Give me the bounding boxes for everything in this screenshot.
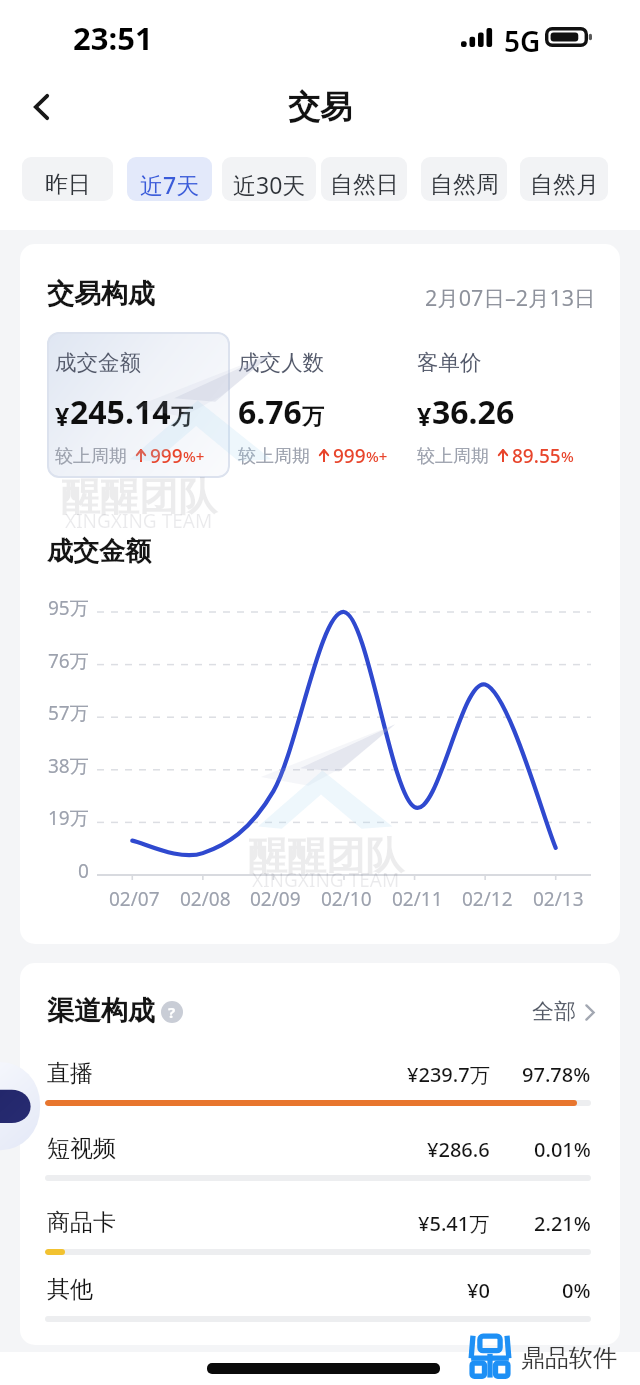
staticText: 成交金额 (47, 535, 151, 568)
staticText: 76万 (48, 648, 89, 674)
staticText: 交易 (288, 87, 352, 127)
staticText: 0.01% (534, 1136, 591, 1163)
button[interactable]: 自然日 (321, 157, 407, 201)
staticText: 万 (171, 403, 193, 431)
button[interactable] (47, 332, 230, 478)
staticText: %+ (366, 446, 388, 466)
staticText: 0% (562, 1277, 591, 1304)
staticText: 较上周期 (238, 445, 310, 468)
staticText: 近7天 (140, 169, 200, 200)
staticText: 自然月 (530, 170, 599, 199)
staticText: 02/07 (109, 886, 160, 912)
staticText: 02/11 (392, 886, 443, 912)
staticText: 较上周期 (417, 445, 489, 468)
staticText: 鼎品软件 (521, 1343, 617, 1373)
staticText: ¥239.7万 (407, 1061, 490, 1088)
staticText: 36.26 (432, 390, 515, 434)
staticText: ¥0 (467, 1277, 490, 1304)
staticText: XINGXING TEAM (252, 867, 400, 893)
staticText: 95万 (48, 595, 89, 621)
staticText: XINGXING TEAM (65, 508, 213, 534)
button[interactable]: 近7天 (127, 157, 212, 201)
staticText: 其他 (47, 1275, 93, 1304)
staticText: 万 (302, 403, 324, 431)
button[interactable]: 直播 (20, 1045, 620, 1111)
staticText: 6.76 (238, 390, 302, 434)
staticText: 999 (333, 443, 366, 469)
staticText: 短视频 (47, 1134, 116, 1163)
staticText: 渠道构成 (47, 994, 155, 1028)
staticText: 0 (78, 858, 89, 884)
staticText: ¥ (55, 399, 70, 433)
staticText: 2月07日–2月13日 (425, 283, 596, 312)
staticText: 57万 (48, 700, 89, 726)
staticText: 97.78% (522, 1061, 591, 1088)
staticText: 02/13 (533, 886, 584, 912)
staticText: 999 (150, 443, 183, 469)
button[interactable]: 自然周 (421, 157, 507, 201)
staticText: 昨日 (45, 170, 91, 199)
button[interactable]: 成交金额 (55, 332, 235, 478)
staticText: 02/12 (462, 886, 513, 912)
staticText: %+ (183, 446, 205, 466)
staticText: 直播 (47, 1059, 93, 1088)
staticText: 02/10 (321, 886, 372, 912)
staticText: 89.55 (512, 443, 561, 469)
button[interactable]: 商品卡 (20, 1194, 620, 1260)
staticText: 自然周 (430, 170, 499, 199)
staticText: ¥5.41万 (418, 1210, 490, 1237)
button[interactable]: 成交人数 (238, 332, 418, 478)
staticText: % (561, 446, 574, 466)
staticText: 较上周期 (55, 445, 127, 468)
staticText: 19万 (48, 805, 89, 831)
button[interactable]: 近30天 (222, 157, 316, 201)
staticText: 5G (504, 22, 541, 60)
button[interactable]: 短视频 (20, 1120, 620, 1186)
staticText: 245.14 (70, 390, 171, 434)
staticText: 成交人数 (238, 349, 324, 376)
staticText: 自然日 (330, 170, 399, 199)
staticText: 商品卡 (47, 1208, 116, 1237)
staticText: 成交金额 (55, 349, 141, 376)
button[interactable]: Back (14, 80, 68, 134)
button[interactable]: 其他 (20, 1261, 620, 1327)
staticText: 醒醒团队 (61, 472, 217, 521)
staticText: 客单价 (417, 349, 482, 376)
staticText: ? (168, 1002, 176, 1022)
staticText: 近30天 (233, 169, 306, 200)
staticText: ¥ (417, 399, 432, 433)
staticText: 交易构成 (47, 277, 155, 311)
staticText: 2.21% (534, 1210, 591, 1237)
button[interactable]: 昨日 (22, 157, 113, 201)
button[interactable]: 全部 (532, 998, 595, 1026)
staticText: 38万 (48, 753, 89, 779)
staticText: 02/08 (180, 886, 231, 912)
staticText: 醒醒团队 (248, 831, 404, 880)
staticText: 全部 (532, 998, 576, 1026)
button[interactable]: 客单价 (417, 332, 597, 478)
button[interactable]: 自然月 (520, 157, 608, 201)
staticText: 02/09 (250, 886, 301, 912)
staticText: 23:51 (73, 17, 153, 59)
button[interactable]: Help (161, 1001, 183, 1023)
staticText: ¥286.6 (427, 1136, 490, 1163)
